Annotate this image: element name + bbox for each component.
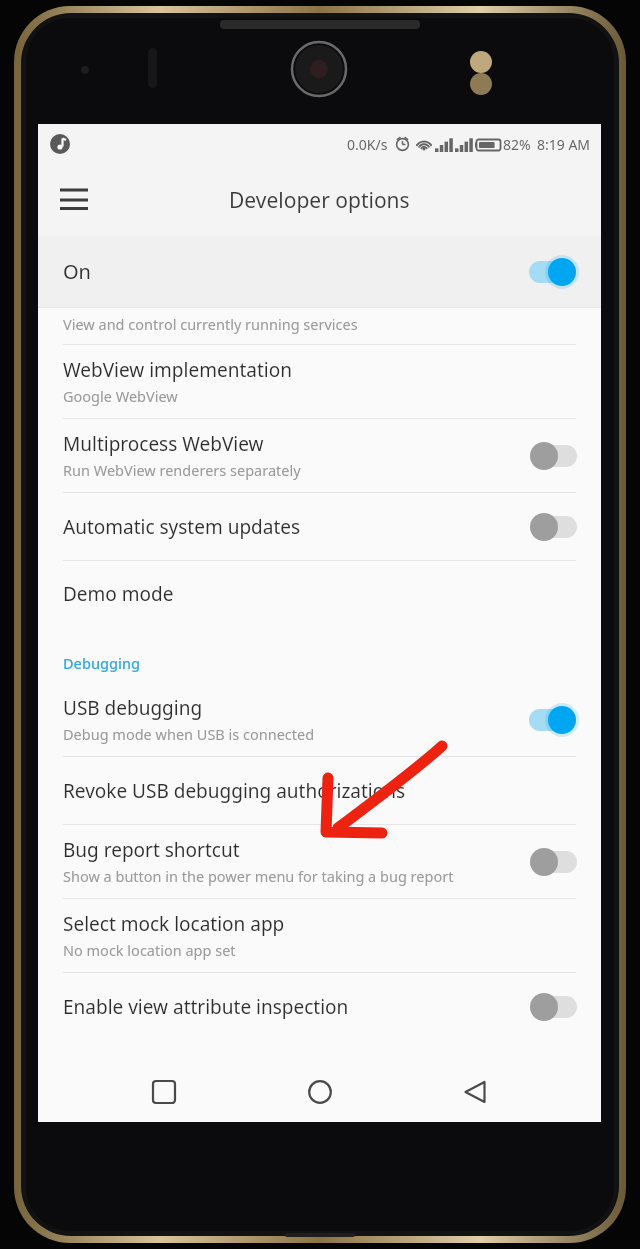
- button[interactable]: Bug report shortcut: [38, 825, 601, 898]
- staticText: Automatic system updates: [63, 514, 301, 540]
- button[interactable]: Revoke USB debugging authorizations: [38, 757, 601, 824]
- staticText: Multiprocess WebView: [63, 431, 264, 457]
- staticText: Google WebView: [63, 386, 178, 406]
- button[interactable]: Toggle on: [527, 255, 579, 289]
- button[interactable]: USB debugging: [38, 683, 601, 756]
- button[interactable]: Enable view attribute inspection: [38, 973, 601, 1040]
- staticText: Select mock location app: [63, 911, 285, 937]
- staticText: Developer options: [229, 186, 410, 215]
- staticText: USB debugging: [63, 695, 203, 721]
- button[interactable]: Toggle off: [527, 990, 579, 1024]
- staticText: Run WebView renderers separately: [63, 460, 301, 480]
- button[interactable]: Automatic system updates: [38, 493, 601, 560]
- button[interactable]: Demo mode: [38, 561, 601, 627]
- staticText: Revoke USB debugging authorizations: [63, 778, 406, 804]
- staticText: 82%: [503, 135, 531, 154]
- button[interactable]: Back: [445, 1062, 505, 1122]
- staticText: Bug report shortcut: [63, 837, 240, 863]
- button[interactable]: Open navigation menu: [48, 174, 100, 226]
- button[interactable]: Select mock location app: [38, 899, 601, 972]
- button[interactable]: Toggle off: [527, 439, 579, 473]
- button[interactable]: WebView implementation: [38, 345, 601, 418]
- button[interactable]: Toggle on: [527, 703, 579, 737]
- button[interactable]: View and control currently running servi…: [38, 308, 601, 344]
- button[interactable]: On: [38, 236, 601, 307]
- button[interactable]: Home: [290, 1062, 350, 1122]
- staticText: 0.0K/s: [347, 135, 388, 154]
- staticText: Debugging: [63, 653, 140, 673]
- staticText: No mock location app set: [63, 940, 236, 960]
- button[interactable]: Toggle off: [527, 510, 579, 544]
- button[interactable]: Multiprocess WebView: [38, 419, 601, 492]
- staticText: Demo mode: [63, 581, 174, 607]
- staticText: WebView implementation: [63, 357, 292, 383]
- staticText: Debug mode when USB is connected: [63, 724, 315, 744]
- button[interactable]: Recent apps: [134, 1062, 194, 1122]
- staticText: On: [63, 258, 91, 285]
- staticText: Enable view attribute inspection: [63, 994, 349, 1020]
- staticText: 8:19 AM: [537, 135, 591, 154]
- staticText: Show a button in the power menu for taki…: [63, 866, 454, 886]
- button[interactable]: Toggle off: [527, 845, 579, 879]
- staticText: View and control currently running servi…: [63, 314, 358, 334]
